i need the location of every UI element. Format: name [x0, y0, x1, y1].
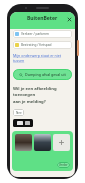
staticText: Mijn onderwerp staat er niet tussen [13, 53, 72, 63]
staticText: Verder [59, 163, 68, 167]
button[interactable]: Foto [34, 134, 51, 151]
staticText: BuitenBeter [27, 15, 58, 22]
button[interactable]: Dumping afval geval uit [13, 69, 72, 80]
button[interactable]: Nee [13, 109, 24, 116]
staticText: aan je melding? [13, 99, 46, 105]
button[interactable]: Verkeer / parkeren [13, 30, 72, 38]
button[interactable]: Sluiten [65, 15, 73, 23]
button[interactable]: Media [13, 119, 33, 127]
staticText: Verkeer / parkeren [21, 32, 50, 36]
button[interactable]: Afbeelding toevoegen [53, 134, 70, 151]
staticText: Dumping afval geval uit [25, 72, 66, 77]
button[interactable]: Mijn onderwerp staat er niet tussen [13, 52, 72, 64]
staticText: Bestrating / fietspad [21, 43, 52, 47]
button[interactable]: Foto [15, 134, 32, 151]
staticText: Nee [16, 111, 22, 115]
staticText: Wil je een afbeelding toevoegen [13, 86, 72, 98]
button[interactable]: Bestrating / fietspad [13, 41, 72, 49]
button[interactable]: Verder [57, 162, 70, 168]
